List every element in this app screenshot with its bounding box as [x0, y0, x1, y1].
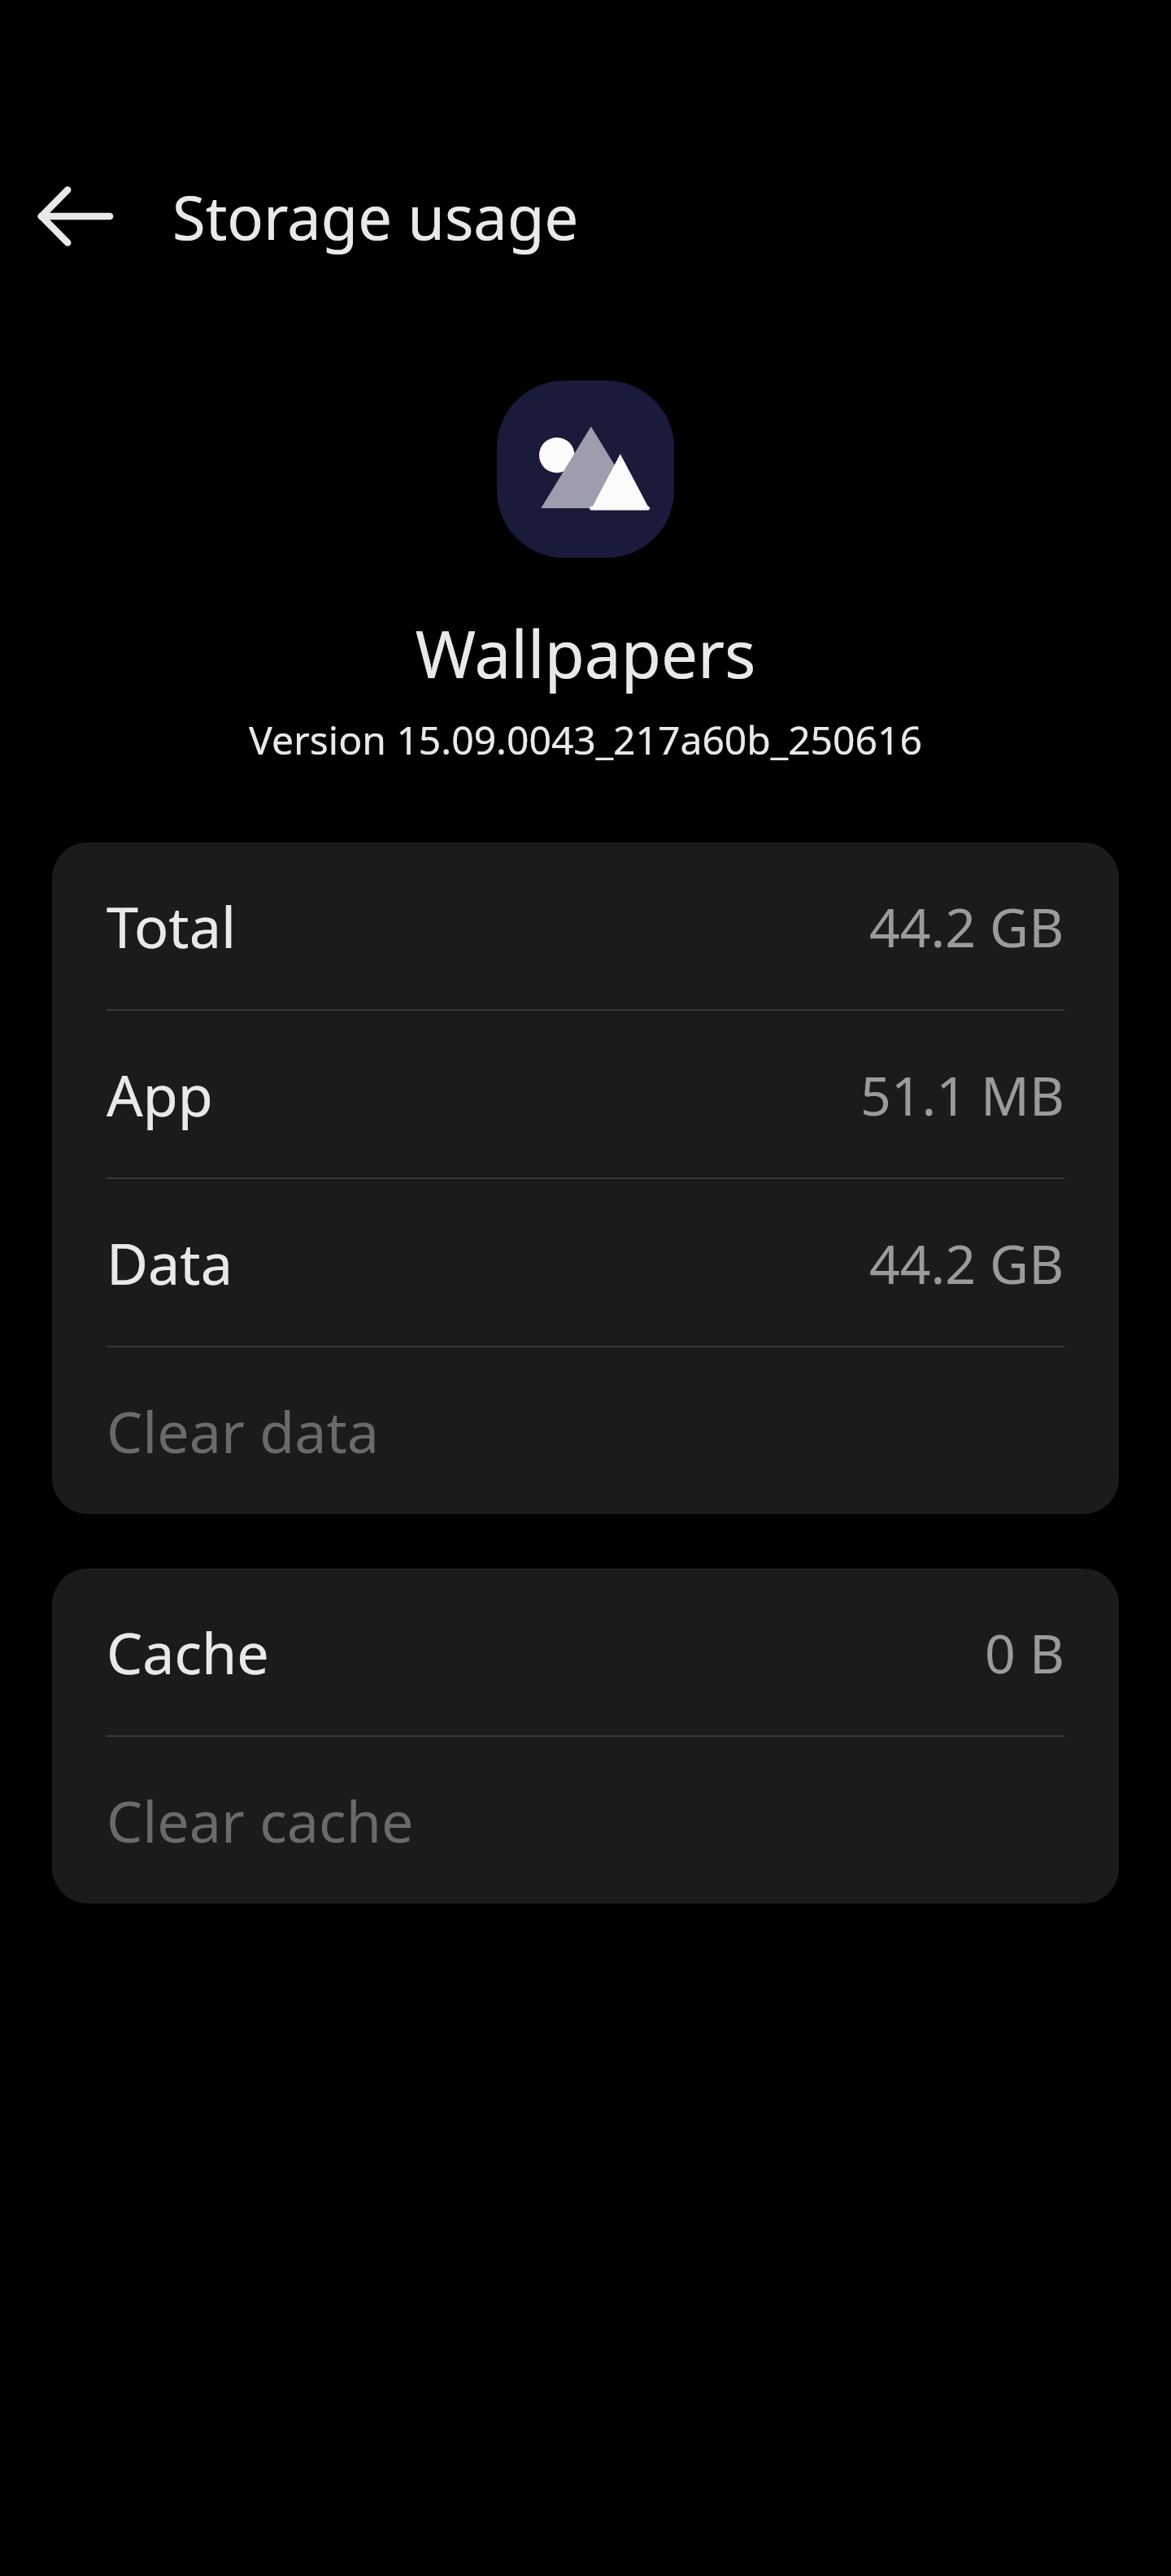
staticText: Version 15.09.0043_217a60b_250616	[0, 713, 1171, 766]
staticText: Clear cache	[107, 1782, 414, 1859]
button[interactable]: Clear cache	[52, 1737, 1119, 1904]
staticText: Storage usage	[172, 176, 579, 258]
button[interactable]: Cache	[52, 1569, 1119, 1735]
staticText: 44.2 GB	[869, 1226, 1064, 1299]
button[interactable]: Back	[31, 172, 119, 260]
staticText: Cache	[107, 1613, 269, 1690]
button[interactable]: App	[52, 1011, 1119, 1177]
staticText: App	[107, 1055, 213, 1133]
button[interactable]: Data	[52, 1179, 1119, 1346]
staticText: Total	[107, 887, 236, 964]
staticText: 0 B	[985, 1616, 1064, 1689]
staticText: Clear data	[107, 1392, 380, 1469]
button[interactable]: Total	[52, 842, 1119, 1009]
button[interactable]: Clear data	[52, 1347, 1119, 1514]
staticText: 51.1 MB	[860, 1058, 1064, 1131]
staticText: 44.2 GB	[869, 890, 1064, 963]
staticText: Wallpapers	[0, 608, 1171, 697]
staticText: Data	[107, 1224, 233, 1301]
